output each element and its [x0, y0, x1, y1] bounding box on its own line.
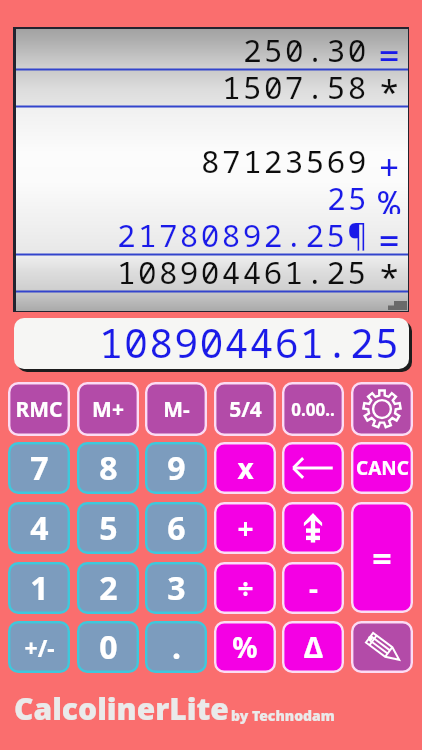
staticText: 21780892.25¶ [117, 214, 369, 251]
staticText: 5 [99, 506, 118, 550]
staticText: 1 [30, 566, 49, 610]
button[interactable]: Notes [351, 621, 413, 673]
staticText: 2 [99, 566, 118, 610]
staticText: CalcolinerLite [14, 688, 229, 729]
staticText: = [372, 535, 392, 581]
button[interactable]: 8 [77, 442, 139, 494]
button[interactable]: 5/4 [214, 382, 276, 436]
button[interactable]: 3 [145, 562, 207, 614]
staticText: * [378, 66, 401, 103]
staticText: 7 [30, 446, 49, 490]
button[interactable]: Δ [282, 621, 344, 673]
button[interactable]: Memory [282, 502, 344, 554]
staticText: = [378, 214, 401, 251]
staticText: 108904461.25 [117, 251, 369, 288]
button[interactable]: - [282, 562, 344, 614]
button[interactable]: 1 [8, 562, 70, 614]
button[interactable]: M- [145, 382, 207, 436]
staticText: - [309, 569, 318, 607]
staticText: + [378, 140, 401, 177]
button[interactable]: 9 [145, 442, 207, 494]
staticText: % [378, 177, 401, 214]
staticText: 250.30 [243, 29, 369, 66]
staticText: 6 [167, 506, 186, 550]
staticText: 8 [99, 446, 118, 490]
button[interactable]: ÷ [214, 562, 276, 614]
staticText: 9 [167, 446, 186, 490]
staticText: 25 [327, 177, 369, 214]
button[interactable]: 250.30 [16, 29, 408, 311]
staticText: = [378, 29, 401, 66]
button[interactable]: 108904461.25 [14, 318, 409, 369]
staticText: . [172, 625, 181, 669]
button[interactable]: 5 [77, 502, 139, 554]
button[interactable]: Backspace [282, 442, 344, 494]
staticText: Δ [304, 628, 323, 666]
staticText: 1507.58 [222, 66, 369, 103]
staticText: x [237, 449, 254, 487]
button[interactable]: 4 [8, 502, 70, 554]
button[interactable]: CANC [351, 442, 413, 494]
staticText: 0 [99, 625, 118, 669]
staticText: M+ [92, 395, 124, 424]
button[interactable]: 2 [77, 562, 139, 614]
staticText: +/- [24, 632, 55, 663]
button[interactable]: RMC [8, 382, 70, 436]
staticText: 4 [30, 506, 49, 550]
button[interactable]: . [145, 621, 207, 673]
button[interactable]: % [214, 621, 276, 673]
button[interactable]: x [214, 442, 276, 494]
staticText: ÷ [237, 569, 254, 607]
button[interactable]: 0 [77, 621, 139, 673]
staticText: 87123569 [201, 140, 369, 177]
button[interactable]: 6 [145, 502, 207, 554]
staticText: + [237, 509, 254, 547]
staticText: by Technodam [231, 706, 335, 725]
button[interactable]: Settings [351, 382, 413, 436]
button[interactable]: 7 [8, 442, 70, 494]
staticText: CANC [356, 455, 409, 481]
button[interactable]: = [351, 502, 413, 613]
staticText: 5/4 [229, 395, 262, 424]
staticText: 3 [167, 566, 186, 610]
staticText: * [378, 251, 401, 288]
button[interactable]: +/- [8, 621, 70, 673]
staticText: % [232, 628, 258, 666]
button[interactable]: M+ [77, 382, 139, 436]
staticText: M- [163, 395, 190, 424]
button[interactable]: + [214, 502, 276, 554]
staticText: 0.00.. [291, 398, 335, 421]
button[interactable]: 0.00.. [282, 382, 344, 436]
staticText: 108904461.25 [99, 318, 401, 366]
staticText: RMC [15, 395, 63, 424]
